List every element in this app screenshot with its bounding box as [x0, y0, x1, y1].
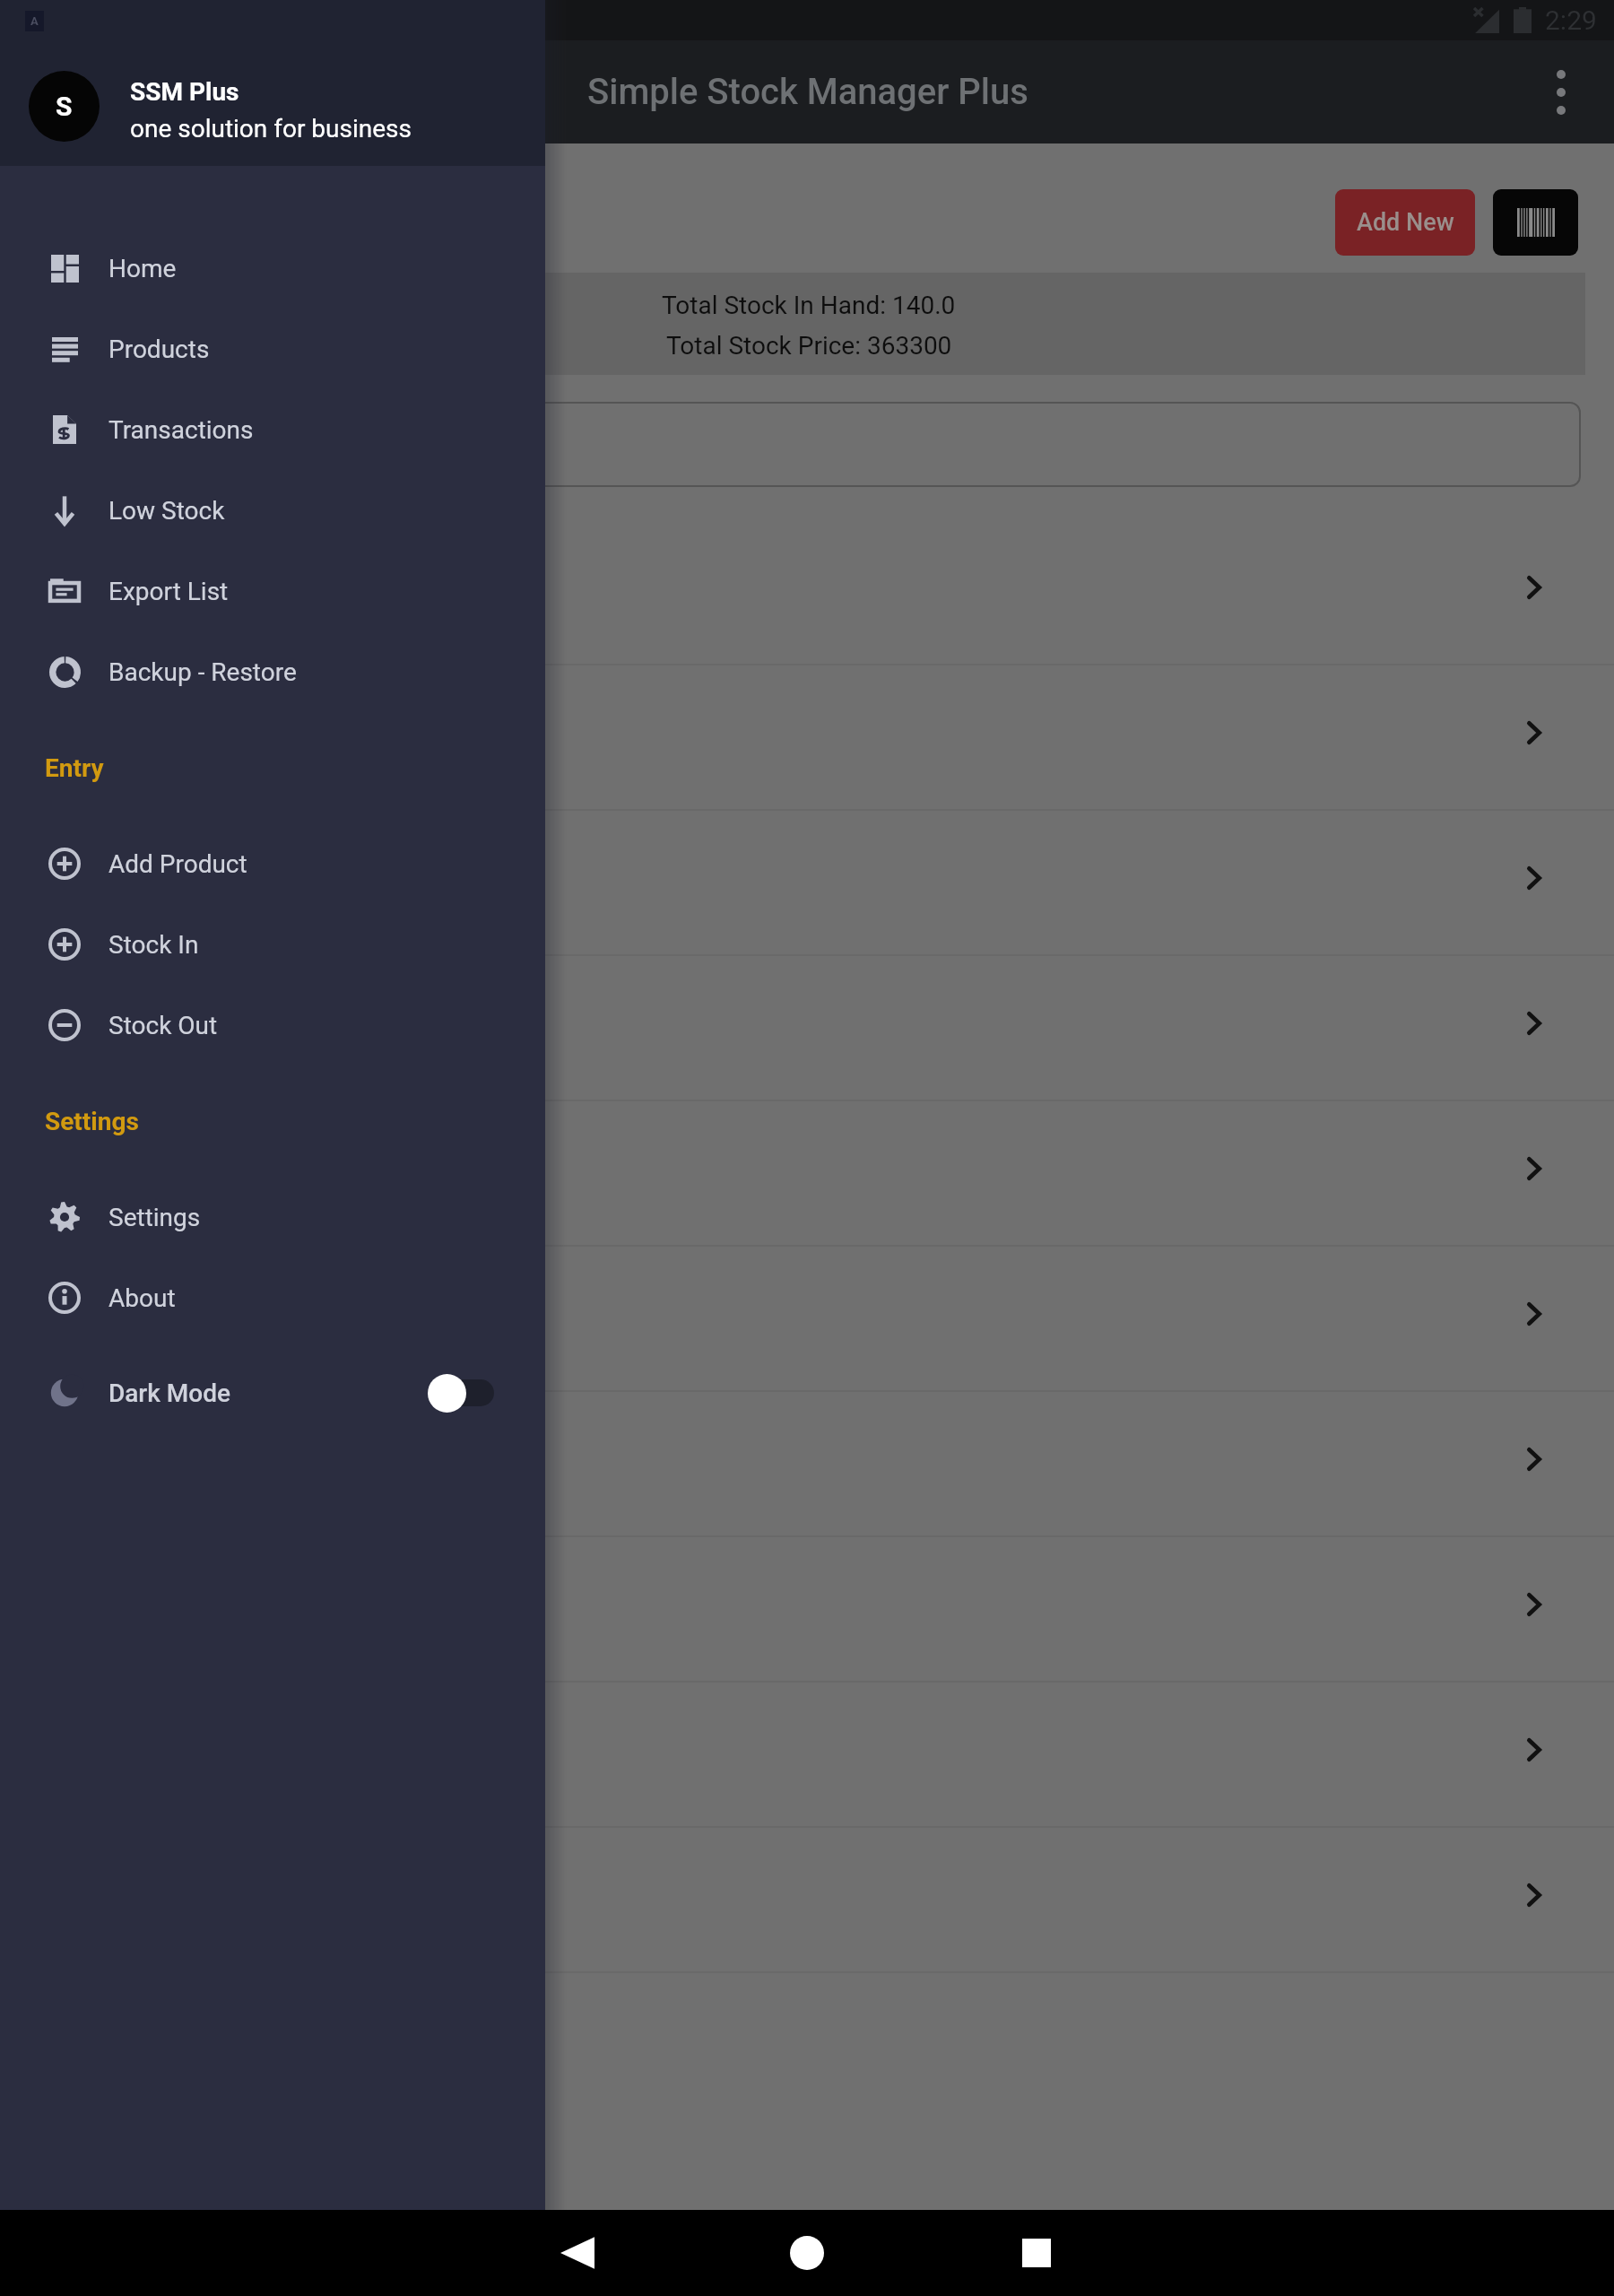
- staticText: Transactions: [108, 415, 254, 445]
- staticText: Add Product: [108, 849, 247, 879]
- staticText: About: [108, 1283, 176, 1313]
- button[interactable]: Product item: [0, 520, 1614, 664]
- button[interactable]: Dark Mode: [0, 1352, 545, 1433]
- button[interactable]: Product item: [0, 1247, 1614, 1390]
- button[interactable]: Stock In: [0, 904, 545, 985]
- button[interactable]: Product item: [0, 1392, 1614, 1535]
- button[interactable]: Stock Out: [0, 985, 545, 1065]
- button[interactable]: Product item: [0, 811, 1614, 954]
- staticText: Backup - Restore: [108, 657, 297, 687]
- button[interactable]: Scan barcode: [1493, 189, 1578, 256]
- staticText: Add New: [1357, 208, 1454, 237]
- staticText: A: [30, 14, 39, 28]
- button[interactable]: Low Stock: [0, 470, 545, 551]
- button[interactable]: Home: [0, 228, 545, 309]
- staticText: Simple Stock Manager Plus: [587, 71, 1028, 113]
- button[interactable]: Home: [692, 2210, 922, 2296]
- button[interactable]: Product item: [0, 956, 1614, 1100]
- button[interactable]: Product item: [0, 665, 1614, 809]
- staticText: Products: [108, 335, 210, 364]
- staticText: Entry: [45, 753, 104, 783]
- button[interactable]: Settings: [0, 1177, 545, 1257]
- staticText: Low Stock: [108, 496, 225, 526]
- staticText: S: [56, 91, 73, 122]
- button[interactable]: Back: [463, 2210, 692, 2296]
- staticText: 2:29: [1545, 4, 1597, 36]
- button[interactable]: Transactions: [0, 389, 545, 470]
- staticText: Stock In: [108, 930, 199, 960]
- button[interactable]: Export List: [0, 551, 545, 631]
- button[interactable]: Search products: [33, 402, 1581, 487]
- staticText: Home: [108, 254, 177, 283]
- button[interactable]: About: [0, 1257, 545, 1338]
- button[interactable]: Product item: [0, 1828, 1614, 1971]
- staticText: Stock Out: [108, 1011, 218, 1040]
- button[interactable]: More options: [1508, 40, 1614, 143]
- staticText: one solution for business: [130, 114, 412, 143]
- staticText: Total Stock Price: 363300: [666, 331, 952, 361]
- button[interactable]: Product item: [0, 1683, 1614, 1826]
- button[interactable]: Backup - Restore: [0, 631, 545, 712]
- staticText: Settings: [45, 1107, 139, 1136]
- button[interactable]: Add Product: [0, 823, 545, 904]
- button[interactable]: Product item: [0, 1537, 1614, 1681]
- staticText: Export List: [108, 577, 229, 606]
- staticText: Total Stock In Hand: 140.0: [662, 291, 956, 320]
- staticText: SSM Plus: [130, 77, 239, 107]
- staticText: Dark Mode: [108, 1378, 230, 1408]
- button[interactable]: Recent apps: [922, 2210, 1151, 2296]
- staticText: Settings: [108, 1203, 201, 1232]
- button[interactable]: Product item: [0, 1101, 1614, 1245]
- button[interactable]: Products: [0, 309, 545, 389]
- button[interactable]: Add New: [1335, 189, 1475, 256]
